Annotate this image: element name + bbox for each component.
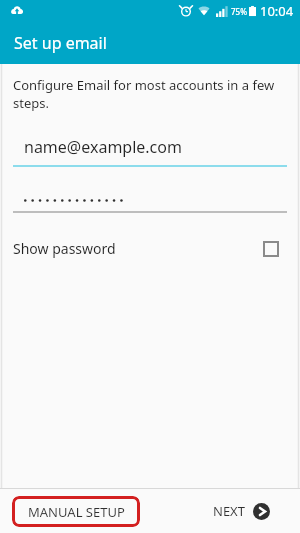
staticText: Set up email xyxy=(14,32,107,54)
staticText: NEXT xyxy=(213,502,245,520)
staticText: 10:04 xyxy=(260,2,294,20)
button[interactable]: NEXT xyxy=(213,502,270,520)
staticText: 75% xyxy=(231,6,247,17)
staticText: name@example.com xyxy=(24,136,182,158)
other: Next xyxy=(253,503,270,520)
staticText: Show password xyxy=(13,239,116,258)
staticText: MANUAL SETUP xyxy=(28,503,125,521)
staticText: Configure Email for most accounts in a f… xyxy=(13,76,287,112)
other: Show password checkbox xyxy=(263,241,279,257)
button[interactable]: MANUAL SETUP xyxy=(12,496,140,527)
button[interactable]: Show password xyxy=(0,231,300,266)
